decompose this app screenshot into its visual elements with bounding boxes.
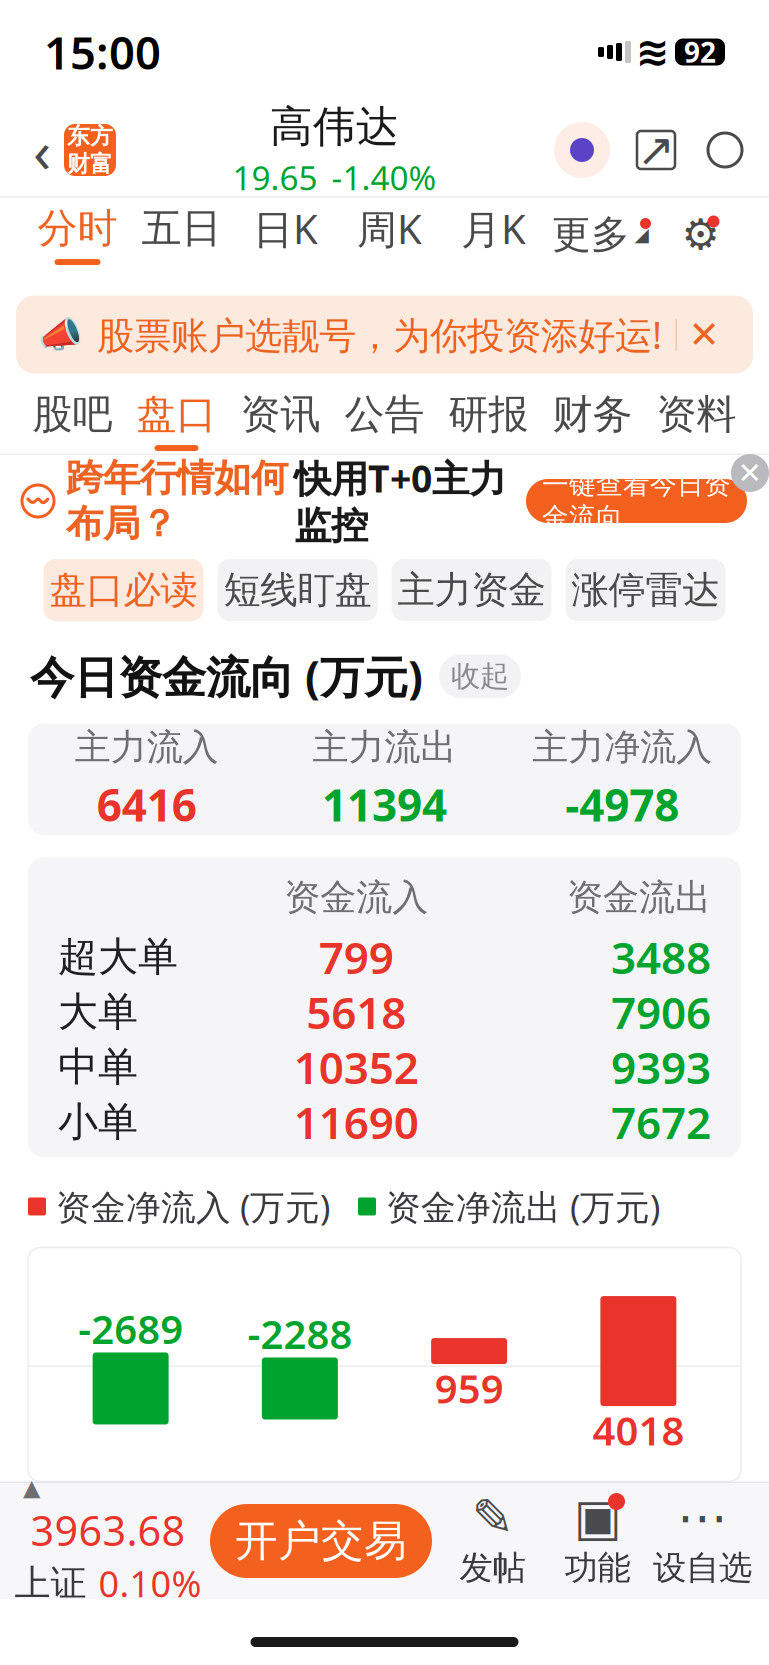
staticText: 资料 (656, 390, 736, 439)
staticText: 〰 (23, 488, 52, 514)
button[interactable]: Chart settings (657, 197, 743, 271)
staticText: 92 (684, 33, 716, 71)
staticText: ≋ (636, 29, 670, 75)
button[interactable]: ▲ (14, 1475, 202, 1607)
staticText: 股票账户选靓号，为你投资添好运! (97, 310, 662, 359)
button[interactable]: 月K (441, 197, 545, 271)
staticText: 设自选 (653, 1547, 752, 1588)
staticText: ▲ (23, 1475, 40, 1500)
staticText: 功能 (564, 1547, 630, 1588)
button[interactable]: Search (701, 125, 749, 175)
staticText: 今日资金流向 (万元) (30, 647, 423, 705)
staticText: 0.10% (98, 1559, 201, 1607)
button[interactable]: 收起 (439, 654, 521, 698)
button[interactable]: 盘口 (124, 387, 228, 453)
button[interactable]: 开户交易 (210, 1504, 432, 1578)
staticText: 分时 (37, 204, 117, 253)
staticText: 资讯 (240, 390, 320, 439)
staticText: 主力流出 (312, 725, 456, 769)
staticText: 15:00 (44, 22, 161, 82)
staticText: -4978 (565, 775, 679, 834)
staticText: ✕ (688, 313, 719, 356)
button[interactable]: 短线盯盘 (217, 559, 377, 621)
staticText: ⚙ (681, 210, 719, 259)
button[interactable]: 公告 (332, 387, 436, 453)
button[interactable]: 涨停雷达 (565, 559, 725, 621)
staticText: 3488 (611, 928, 711, 986)
staticText: 资金净流入 (万元) (56, 1183, 330, 1229)
staticText: 3963.68 (30, 1502, 185, 1557)
button[interactable]: ✎ (440, 1491, 545, 1591)
button[interactable]: 资料 (644, 387, 748, 453)
staticText: 周K (357, 202, 422, 255)
staticText: ✕ (737, 456, 762, 490)
staticText: 资金流出 (567, 875, 711, 919)
button[interactable]: 财务 (540, 387, 644, 453)
staticText: 5618 (306, 983, 406, 1041)
staticText: -2689 (78, 1302, 183, 1355)
button[interactable]: 主力资金 (391, 559, 551, 621)
button[interactable]: Close ad (731, 454, 769, 492)
staticText: 月K (461, 202, 526, 255)
button[interactable]: AI assistant (553, 121, 611, 179)
staticText: 4018 (592, 1403, 684, 1457)
staticText: 主力资金 (397, 567, 545, 613)
staticText: 资金流入 (284, 875, 428, 919)
staticText: 10352 (294, 1038, 419, 1096)
staticText: 财富 (67, 150, 113, 178)
staticText: 股吧 (32, 390, 112, 439)
staticText: 6416 (97, 775, 197, 834)
staticText: -2288 (247, 1307, 352, 1360)
button[interactable]: 周K (337, 197, 441, 271)
staticText: 799 (319, 928, 394, 986)
staticText: 9393 (611, 1038, 711, 1096)
button[interactable]: East Money home (64, 124, 116, 176)
staticText: 19.65 (232, 155, 317, 199)
staticText: 跨年行情如何布局？ (66, 455, 288, 547)
staticText: 中单 (58, 1042, 138, 1091)
staticText: 短线盯盘 (223, 567, 371, 613)
staticText: 发帖 (459, 1547, 525, 1588)
staticText: 高伟达 (270, 101, 399, 153)
staticText: 资金净流出 (万元) (386, 1183, 660, 1229)
staticText: 7672 (611, 1093, 711, 1151)
staticText: 11690 (294, 1093, 419, 1151)
button[interactable]: ▣ (545, 1491, 650, 1591)
staticText: 主力净流入 (532, 725, 712, 769)
staticText: 主力流入 (75, 725, 219, 769)
button[interactable]: 盘口必读 (43, 559, 203, 621)
staticText: 大单 (58, 987, 138, 1036)
staticText: 盘口 (136, 390, 216, 439)
button[interactable]: 📣 (0, 271, 769, 387)
staticText: 7906 (611, 983, 711, 1041)
staticText: 涨停雷达 (571, 567, 719, 613)
button[interactable]: 资讯 (228, 387, 332, 453)
button[interactable]: 研报 (436, 387, 540, 453)
staticText: 一键查看今日资金流向 (542, 468, 731, 534)
button[interactable]: 日K (233, 197, 337, 271)
staticText: 东方 (67, 122, 113, 150)
staticText: ✎ (471, 1489, 513, 1546)
staticText: 959 (435, 1361, 504, 1415)
staticText: ⋯ (677, 1489, 728, 1546)
staticText: 五日 (141, 204, 221, 253)
button[interactable]: 五日 (129, 197, 233, 271)
button[interactable]: Back (20, 120, 64, 180)
staticText: ‹ (33, 111, 51, 189)
button[interactable]: ⋯ (650, 1491, 755, 1591)
button[interactable]: 〰 (0, 455, 769, 547)
button[interactable]: Share (633, 125, 679, 175)
staticText: 公告 (344, 390, 424, 439)
staticText: ◢ (634, 224, 648, 245)
staticText: 快用T+0主力监控 (294, 453, 506, 549)
button[interactable]: 股吧 (20, 387, 124, 453)
staticText: 📣 (38, 314, 83, 355)
button[interactable]: 分时 (25, 197, 129, 271)
button[interactable]: 更多 (545, 197, 657, 271)
staticText: 收起 (451, 658, 509, 694)
staticText: 上证 (14, 1561, 86, 1605)
staticText: 研报 (448, 390, 528, 439)
staticText: 盘口必读 (49, 567, 197, 613)
